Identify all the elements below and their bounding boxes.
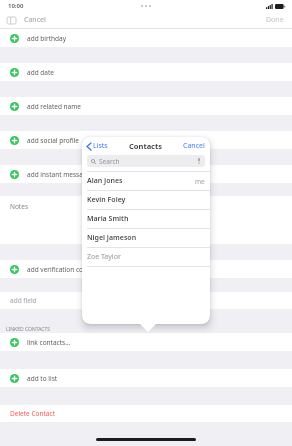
staticText: add related name [27, 102, 81, 111]
staticText: Cancel [183, 141, 205, 151]
button[interactable]: Done [266, 15, 284, 25]
staticText: Cancel [24, 15, 46, 25]
staticText: Maria Smith [87, 214, 129, 224]
button[interactable]: link contacts… [0, 333, 292, 351]
button[interactable]: Search [87, 155, 205, 167]
button[interactable]: Lists [87, 141, 108, 151]
button[interactable]: Notes [0, 196, 292, 244]
staticText: Notes [10, 202, 28, 211]
staticText: me [195, 177, 205, 186]
button[interactable]: Delete Contact [0, 405, 292, 422]
button[interactable]: add related name [0, 97, 292, 115]
staticText: Alan Jones [87, 176, 123, 186]
button[interactable]: Cancel [24, 15, 46, 25]
staticText: Done [266, 15, 284, 25]
button[interactable]: Zoe Taylor [82, 248, 210, 266]
staticText: add to list [27, 374, 58, 383]
staticText: Lists [93, 141, 108, 151]
staticText: LINKED CONTACTS [6, 326, 50, 333]
staticText: add instant message [27, 170, 91, 179]
staticText: add social profile [27, 136, 79, 145]
staticText: Kevin Foley [87, 195, 126, 205]
staticText: Search [99, 157, 120, 166]
button[interactable]: Alan Jones [82, 172, 210, 190]
staticText: Zoe Taylor [87, 252, 121, 262]
button[interactable]: Sidebar [7, 17, 16, 24]
staticText: add field [10, 296, 37, 305]
staticText: add date [27, 68, 54, 77]
button[interactable]: add date [0, 63, 292, 81]
staticText: add birthday [27, 34, 67, 43]
staticText: link contacts… [27, 338, 71, 347]
button[interactable]: add social profile [0, 131, 292, 149]
button[interactable]: add to list [0, 369, 292, 387]
staticText: 10:00 [8, 2, 24, 10]
staticText: Nigel Jameson [87, 233, 137, 243]
staticText: add verification code [27, 265, 91, 274]
button[interactable]: add birthday [0, 29, 292, 47]
button[interactable]: add instant message [0, 165, 292, 183]
button[interactable]: Maria Smith [82, 210, 210, 228]
button[interactable]: add field [0, 292, 292, 309]
button[interactable]: Kevin Foley [82, 191, 210, 209]
button[interactable]: add verification code [0, 260, 292, 278]
staticText: Contacts [129, 141, 163, 151]
button[interactable]: Nigel Jameson [82, 229, 210, 247]
button[interactable]: Cancel [183, 141, 205, 151]
staticText: Delete Contact [10, 409, 55, 418]
